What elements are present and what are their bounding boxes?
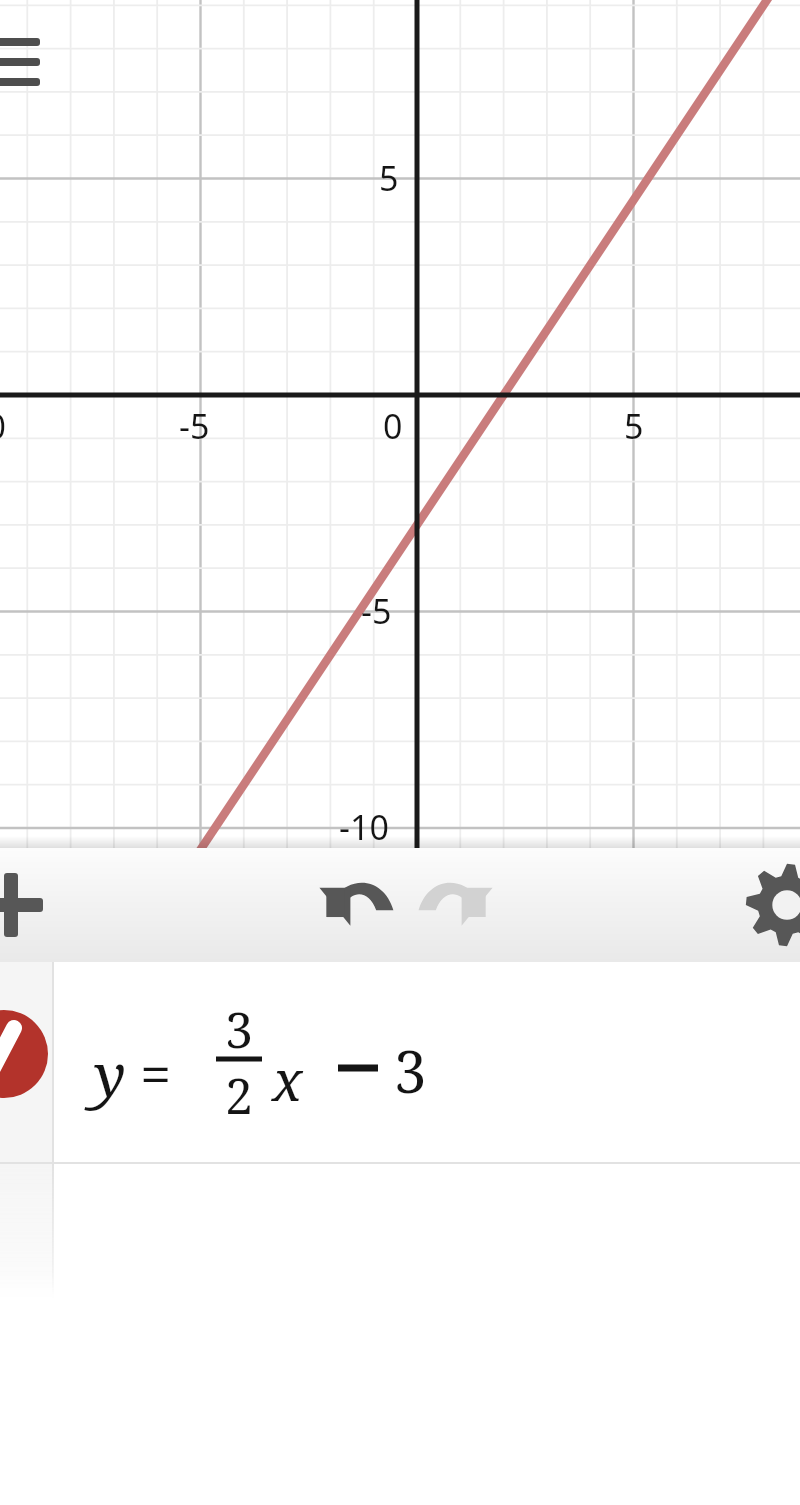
button[interactable]: Menu bbox=[0, 30, 64, 100]
staticText: -10 bbox=[339, 804, 389, 850]
staticText: y bbox=[94, 1033, 126, 1115]
button[interactable]: Settings bbox=[738, 856, 800, 954]
staticText: = bbox=[140, 1035, 172, 1111]
staticText: -5 bbox=[361, 588, 392, 634]
staticText: 2 bbox=[216, 1061, 262, 1129]
button[interactable]: Redo bbox=[410, 862, 496, 948]
staticText: 5 bbox=[624, 403, 644, 449]
button[interactable]: Add expression bbox=[0, 856, 60, 954]
staticText: 3 bbox=[394, 1031, 427, 1110]
staticText: -10 bbox=[0, 403, 6, 449]
staticText: x bbox=[272, 1041, 303, 1117]
staticText: -5 bbox=[179, 403, 210, 449]
button[interactable]: Undo bbox=[316, 862, 402, 948]
staticText: 3 bbox=[216, 995, 262, 1063]
staticText: 5 bbox=[379, 155, 399, 201]
staticText: 0 bbox=[383, 403, 403, 449]
button[interactable]: y bbox=[0, 962, 800, 1162]
button[interactable]: 5 bbox=[0, 0, 800, 848]
